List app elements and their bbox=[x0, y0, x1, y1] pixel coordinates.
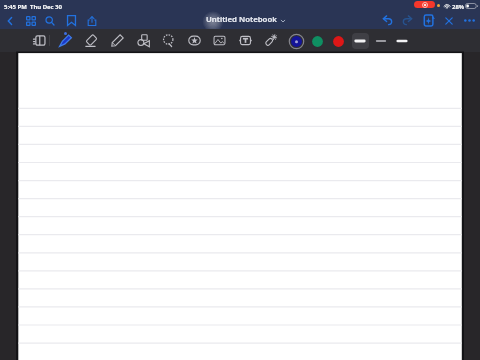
staticText: 28% bbox=[452, 3, 465, 11]
button[interactable]: Image bbox=[208, 29, 230, 52]
button[interactable]: Redo bbox=[398, 12, 416, 29]
button[interactable]: Text bbox=[234, 29, 256, 52]
button[interactable]: Thick stroke bbox=[351, 33, 369, 49]
staticText: Untitled Notebook bbox=[206, 14, 277, 25]
button[interactable]: Sticker bbox=[183, 29, 205, 52]
button[interactable]: Shape bbox=[132, 29, 154, 52]
button[interactable]: Back bbox=[1, 12, 19, 29]
button[interactable]: Stop recording bbox=[414, 1, 435, 8]
button[interactable]: Pointer bbox=[259, 29, 281, 52]
button[interactable]: Red colour bbox=[329, 32, 347, 50]
button[interactable]: Green colour bbox=[308, 32, 326, 50]
staticText: 5:45 PM bbox=[4, 3, 27, 11]
button[interactable]: Search bbox=[41, 12, 59, 29]
button[interactable]: Eraser bbox=[80, 29, 102, 52]
button[interactable]: Pen bbox=[54, 29, 76, 52]
button[interactable]: Panel bbox=[28, 29, 50, 52]
button[interactable]: Lasso bbox=[157, 29, 179, 52]
button[interactable]: Undo bbox=[378, 12, 396, 29]
button[interactable]: Bookmark bbox=[62, 12, 80, 29]
staticText: Thu Dec 30 bbox=[30, 3, 62, 11]
button[interactable]: Navy colour bbox=[287, 32, 305, 50]
button[interactable]: Highlighter bbox=[106, 29, 128, 52]
button[interactable]: More options bbox=[460, 12, 478, 29]
button[interactable]: New AI page bbox=[420, 12, 438, 29]
button[interactable]: Medium stroke bbox=[372, 33, 390, 49]
button[interactable]: Share bbox=[83, 12, 101, 29]
button[interactable]: Thin stroke bbox=[393, 33, 411, 49]
button[interactable]: Close bbox=[440, 12, 458, 29]
button[interactable]: Pages bbox=[22, 12, 40, 29]
